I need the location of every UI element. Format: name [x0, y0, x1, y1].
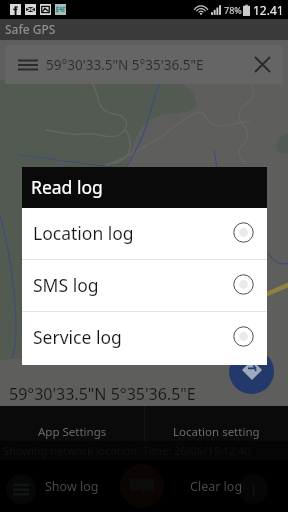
- staticText: Showing network location. Time: 26/06/15…: [3, 443, 251, 458]
- button[interactable]: Service log: [22, 312, 267, 363]
- button[interactable]: Location log: [22, 208, 267, 259]
- staticText: 12.41: [253, 2, 284, 18]
- button[interactable]: Back: [238, 474, 268, 504]
- staticText: Clear log: [190, 478, 243, 495]
- button[interactable]: Location setting: [144, 406, 288, 441]
- staticText: SMS log: [33, 273, 99, 297]
- staticText: Service log: [33, 325, 122, 349]
- staticText: Show log: [45, 478, 99, 495]
- button[interactable]: Home: [120, 464, 164, 508]
- staticText: Location log: [33, 221, 134, 245]
- button[interactable]: Recent apps: [6, 474, 36, 504]
- button[interactable]: Directions: [229, 349, 274, 394]
- staticText: Read log: [31, 175, 103, 199]
- staticText: 59°30'33.5"N 5°35'36.5"E: [46, 56, 204, 74]
- button[interactable]: App Settings: [0, 406, 144, 441]
- button[interactable]: SMS log: [22, 260, 267, 311]
- button[interactable]: Clear log: [144, 460, 288, 512]
- button[interactable]: Show log: [0, 460, 144, 512]
- other: Menu: [18, 55, 38, 75]
- staticText: 59°30'33.5"N 5°35'36.5"E: [9, 383, 196, 405]
- staticText: Location setting: [173, 424, 260, 440]
- staticText: App Settings: [38, 424, 107, 440]
- other: Clear: [255, 57, 270, 72]
- button[interactable]: Menu: [5, 45, 283, 84]
- staticText: Safe GPS: [5, 21, 56, 37]
- staticText: 78%: [224, 4, 242, 16]
